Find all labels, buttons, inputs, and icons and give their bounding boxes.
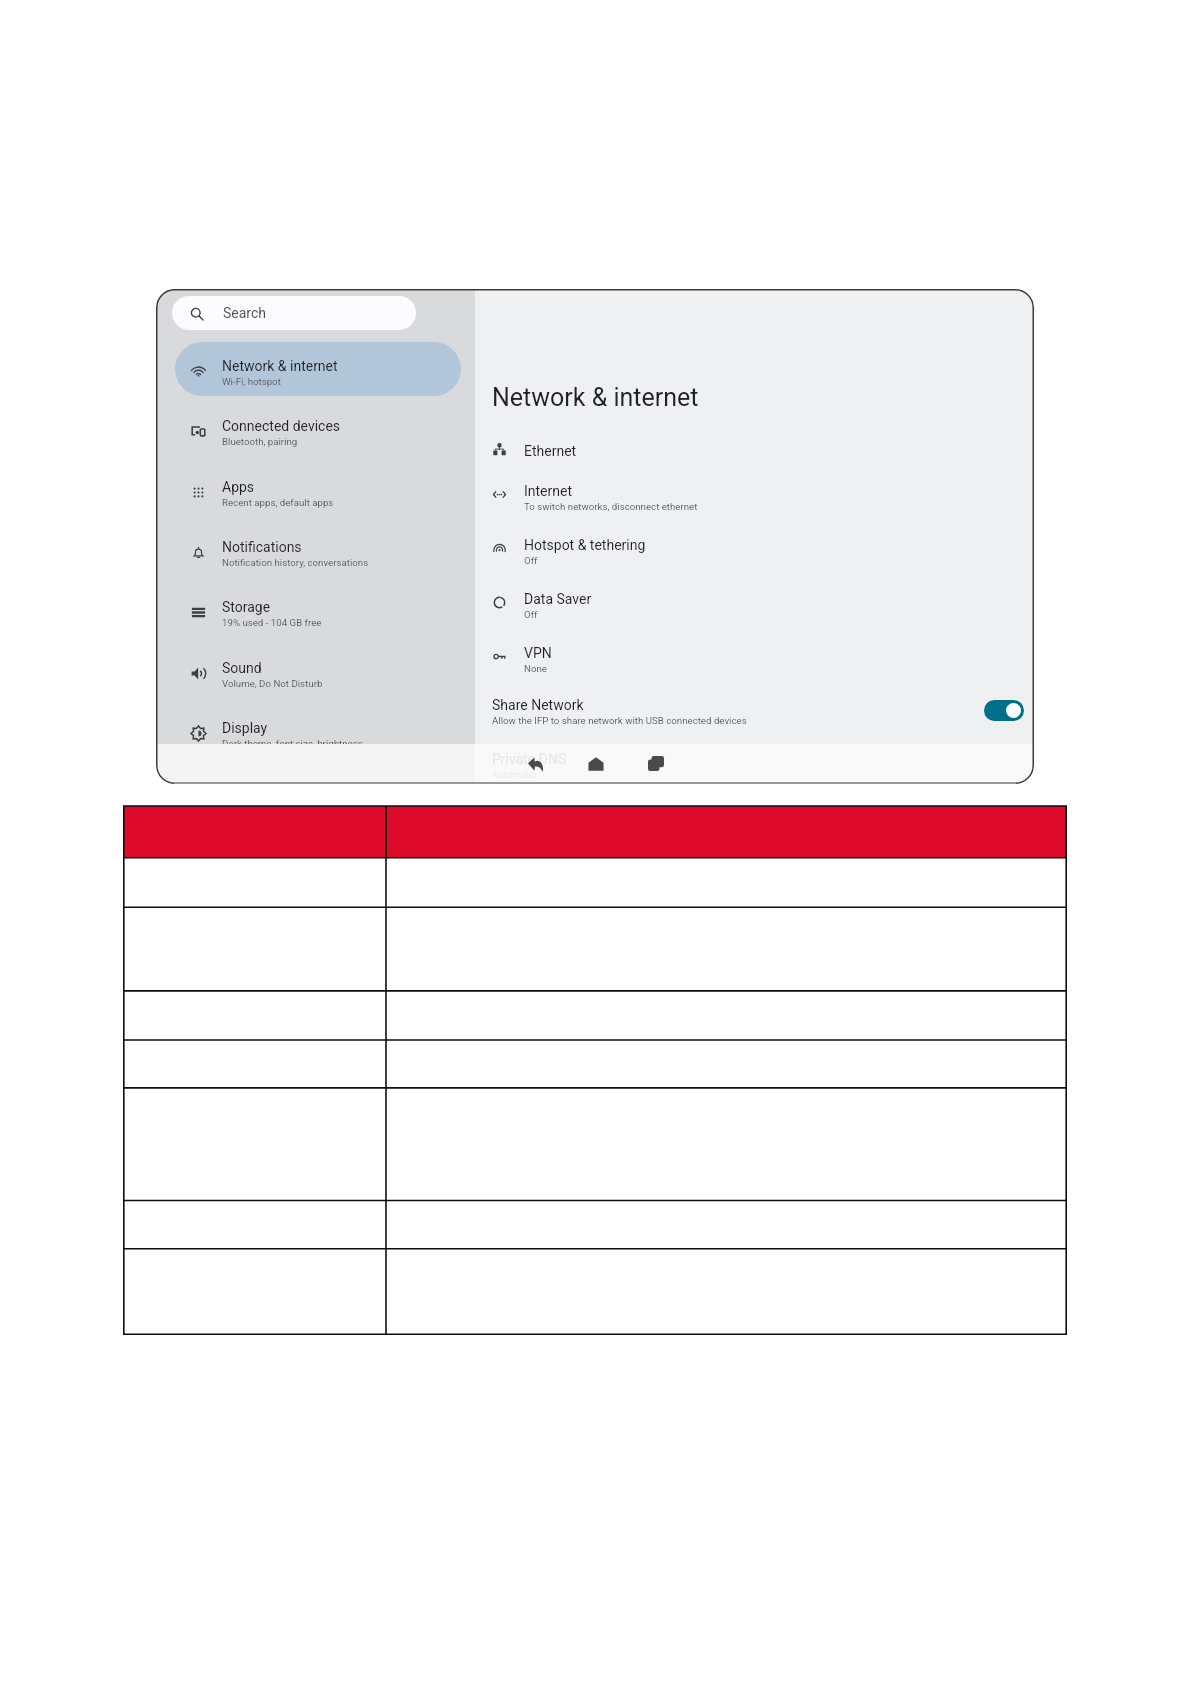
staticText: Ethernet [524, 443, 577, 459]
button[interactable]: Storage [175, 583, 461, 637]
staticText: Apps [222, 479, 255, 495]
staticText: Connected devices [222, 418, 341, 434]
staticText: 19% used - 104 GB free [222, 617, 322, 628]
staticText: To switch networks, disconnect ethernet [524, 501, 698, 512]
button[interactable]: Ethernet [475, 439, 1034, 467]
staticText: VPN [524, 645, 552, 661]
staticText: Network & internet [492, 383, 699, 412]
button[interactable]: Share Network [475, 693, 1034, 731]
staticText: Storage [222, 599, 271, 615]
staticText: Private DNS [492, 751, 567, 767]
staticText: Recent apps, default apps [222, 497, 334, 508]
staticText: Allow the IFP to share network with USB … [492, 715, 747, 726]
staticText: Notifications [222, 539, 302, 555]
staticText: Share Network [492, 697, 584, 713]
button[interactable]: Sound [175, 644, 461, 698]
staticText: Sound [222, 660, 262, 676]
staticText: Bluetooth, pairing [222, 436, 298, 447]
button[interactable]: Apps [175, 463, 461, 517]
button[interactable]: Hotspot & tethering [475, 533, 1034, 573]
staticText: Display [222, 720, 268, 736]
button[interactable]: Home [582, 750, 610, 778]
button[interactable]: Display [175, 704, 461, 744]
button[interactable]: Notifications [175, 523, 461, 577]
staticText: Search [223, 305, 267, 321]
button[interactable]: Share Network toggle [984, 700, 1024, 721]
staticText: Off [524, 609, 538, 620]
button[interactable]: VPN [475, 641, 1034, 681]
staticText: Network & internet [222, 358, 338, 374]
staticText: Internet [524, 483, 573, 499]
button[interactable]: Internet [475, 479, 1034, 519]
button[interactable]: Back [522, 750, 550, 778]
staticText: Wi-Fi, hotspot [222, 376, 281, 387]
staticText: Notification history, conversations [222, 557, 369, 568]
button[interactable]: Data Saver [475, 587, 1034, 627]
button[interactable]: Connected devices [175, 402, 461, 456]
staticText: None [524, 663, 547, 674]
staticText: Off [524, 555, 538, 566]
staticText: Dark theme, font size, brightness [222, 738, 363, 744]
staticText: Data Saver [524, 591, 592, 607]
staticText: Automatic [492, 769, 537, 780]
staticText: Hotspot & tethering [524, 537, 646, 553]
button[interactable]: Search [172, 296, 416, 330]
staticText: Volume, Do Not Disturb [222, 678, 323, 689]
button[interactable]: Recents [642, 750, 670, 778]
button[interactable]: Network & internet [175, 342, 461, 396]
